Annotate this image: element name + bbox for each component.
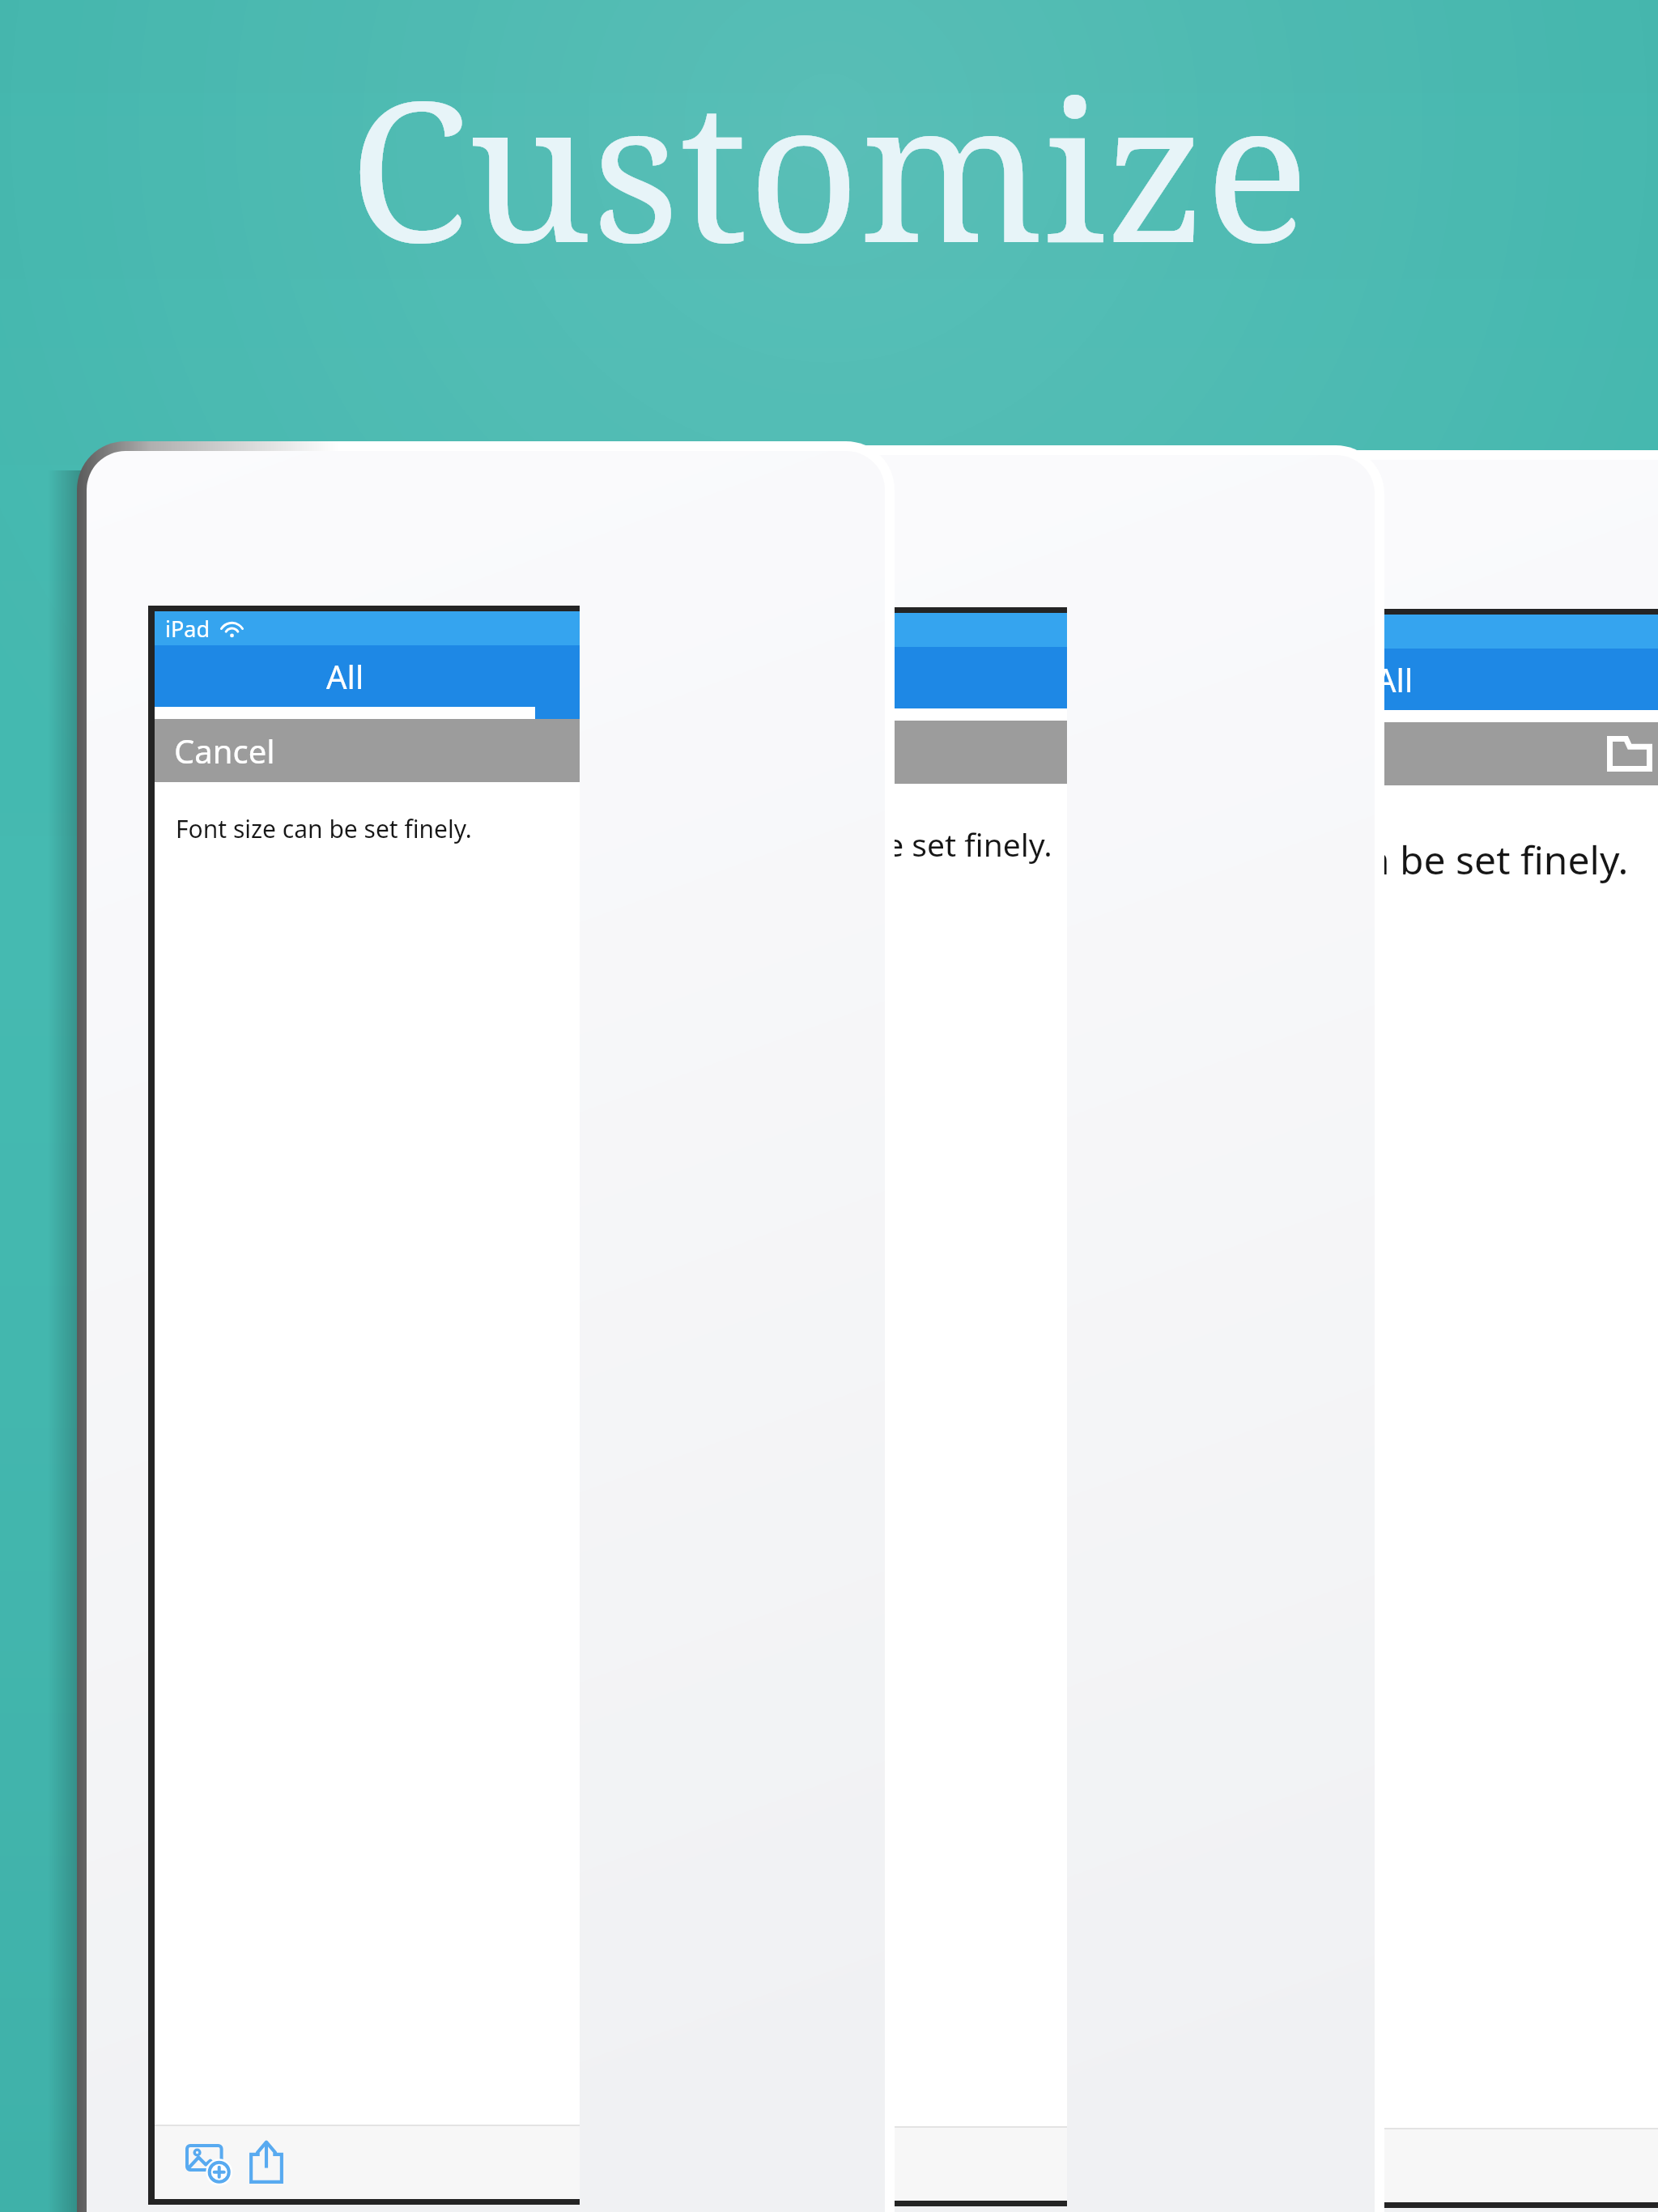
staticText: Font size can be set finely. — [1154, 833, 1629, 886]
staticText: Font size can be set finely. — [176, 812, 472, 845]
button[interactable]: All — [1130, 649, 1658, 710]
button[interactable]: All — [155, 645, 535, 707]
staticText: Font size can be set finely. — [667, 823, 1052, 866]
staticText: All — [326, 654, 364, 698]
staticText: iPad — [165, 614, 210, 644]
button[interactable]: Cancel — [174, 719, 275, 782]
staticText: Customize — [349, 34, 1309, 299]
staticText: All — [1375, 657, 1414, 701]
button[interactable]: Add photo — [182, 2136, 234, 2188]
staticText: Customize — [349, 34, 1309, 299]
button[interactable]: All — [644, 647, 1067, 708]
button[interactable]: New folder — [1605, 731, 1655, 776]
staticText: Cancel — [174, 729, 275, 772]
button[interactable]: Share — [240, 2136, 292, 2188]
